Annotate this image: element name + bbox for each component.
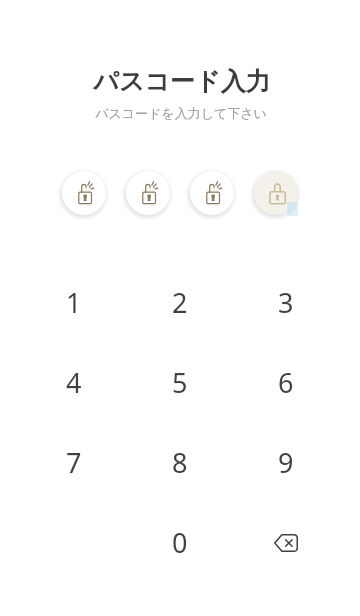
button[interactable]: 1 [43,271,105,333]
button[interactable]: 0 [149,511,211,573]
staticText: 3 [278,284,294,321]
button[interactable]: 5 [149,351,211,413]
staticText: パスコードを入力して下さい [1,105,360,121]
staticText: 4 [66,364,82,401]
staticText: 9 [278,444,294,481]
staticText: 8 [172,444,188,481]
staticText: パスコード入力 [2,66,360,97]
button[interactable]: 3 [255,271,317,333]
staticText: 5 [172,364,188,401]
button[interactable]: 8 [149,431,211,493]
button[interactable]: 7 [43,431,105,493]
button[interactable]: 9 [255,431,317,493]
staticText: 0 [172,524,188,561]
staticText: 7 [66,444,82,481]
button[interactable]: 6 [255,351,317,413]
button[interactable]: 2 [149,271,211,333]
staticText: 1 [66,284,82,321]
button[interactable]: 4 [43,351,105,413]
staticText: 6 [278,364,294,401]
button[interactable]: Backspace [255,511,317,573]
staticText: 2 [172,284,188,321]
